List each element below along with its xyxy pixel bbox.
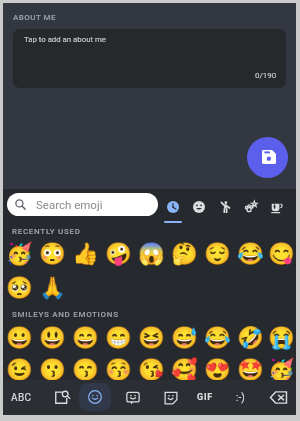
button[interactable]: Animals [238, 195, 264, 231]
button[interactable]: 🤩 [234, 353, 267, 385]
staticText: 🥺 [6, 275, 33, 300]
button[interactable]: 🤣 [234, 321, 267, 353]
button[interactable]: 😉 [3, 353, 36, 385]
button[interactable]: 😌 [201, 237, 234, 269]
button[interactable]: Smileys [186, 195, 212, 231]
staticText: 😄 [72, 325, 99, 350]
staticText: 🤔 [171, 241, 198, 266]
staticText: 🤩 [237, 357, 264, 382]
button[interactable]: 😘 [135, 353, 168, 385]
staticText: 😙 [72, 357, 99, 382]
button[interactable]: 😳 [36, 237, 69, 269]
staticText: 🥳 [268, 357, 295, 382]
staticText: 🥰 [171, 357, 198, 382]
button[interactable]: 😚 [102, 353, 135, 385]
staticText: 🤪 [105, 241, 132, 266]
button[interactable]: 😅 [168, 321, 201, 353]
button[interactable]: Search emoji [7, 193, 158, 216]
button[interactable]: 😁 [102, 321, 135, 353]
button[interactable]: Food [264, 195, 290, 231]
button[interactable]: 😱 [135, 237, 168, 269]
button[interactable]: 😂 [201, 321, 234, 353]
staticText: 😚 [105, 357, 132, 382]
button[interactable]: 👍 [69, 237, 102, 269]
button[interactable]: 🥰 [168, 353, 201, 385]
button[interactable]: 🤪 [102, 237, 135, 269]
button[interactable]: 🥳 [267, 353, 296, 385]
staticText: Search emoji [36, 198, 103, 211]
button[interactable]: Stickers [154, 380, 188, 415]
staticText: 😁 [105, 325, 132, 350]
staticText: 👍 [72, 241, 99, 266]
staticText: 😍 [204, 357, 231, 382]
button[interactable]: 🙏 [36, 271, 69, 303]
button[interactable]: 😂 [234, 237, 267, 269]
staticText: 😘 [138, 357, 165, 382]
button[interactable]: 😗 [36, 353, 69, 385]
staticText: 😃 [39, 325, 66, 350]
button[interactable]: Backspace [261, 380, 295, 415]
button[interactable]: 😭 [267, 321, 296, 353]
staticText: SMILEYS AND EMOTIONS [12, 310, 119, 319]
staticText: 😂 [204, 325, 231, 350]
staticText: 😗 [39, 357, 66, 382]
button[interactable]: 😍 [201, 353, 234, 385]
staticText: 0/190 [255, 71, 277, 80]
staticText: 😆 [138, 325, 165, 350]
button[interactable]: 😙 [69, 353, 102, 385]
button[interactable]: 😋 [267, 237, 296, 269]
button[interactable]: Save [247, 137, 288, 178]
button[interactable]: 😃 [36, 321, 69, 353]
staticText: :-) [236, 392, 245, 404]
button[interactable]: 😀 [3, 321, 36, 353]
staticText: 😳 [39, 241, 66, 266]
button[interactable]: 😆 [135, 321, 168, 353]
staticText: 😉 [6, 357, 33, 382]
staticText: 🙏 [39, 275, 66, 300]
staticText: GIF [197, 392, 214, 403]
button[interactable]: :-) [223, 380, 257, 415]
staticText: 😅 [171, 325, 198, 350]
button[interactable]: People [212, 195, 238, 231]
staticText: 😭 [268, 325, 295, 350]
button[interactable]: Search stickers [45, 380, 79, 415]
button[interactable]: 😄 [69, 321, 102, 353]
staticText: 😋 [268, 241, 295, 266]
button[interactable]: 🥺 [3, 271, 36, 303]
button[interactable]: 🥳 [3, 237, 36, 269]
button[interactable]: Tap to add an about me [13, 29, 286, 88]
staticText: 😂 [237, 241, 264, 266]
staticText: ABC [11, 392, 32, 404]
button[interactable]: ABC [3, 380, 39, 415]
button[interactable]: Emoji kitchen [116, 380, 150, 415]
staticText: 🥳 [6, 241, 33, 266]
button[interactable]: Emoji [79, 383, 111, 411]
staticText: 🤣 [237, 325, 264, 350]
button[interactable]: 🤔 [168, 237, 201, 269]
staticText: 😀 [6, 325, 33, 350]
staticText: RECENTLY USED [12, 227, 81, 236]
button[interactable]: Recent [160, 195, 186, 231]
staticText: ABOUT ME [13, 13, 56, 22]
button[interactable]: GIF [188, 380, 222, 415]
staticText: 😌 [204, 241, 231, 266]
staticText: 😱 [138, 241, 165, 266]
staticText: Tap to add an about me [24, 35, 106, 44]
